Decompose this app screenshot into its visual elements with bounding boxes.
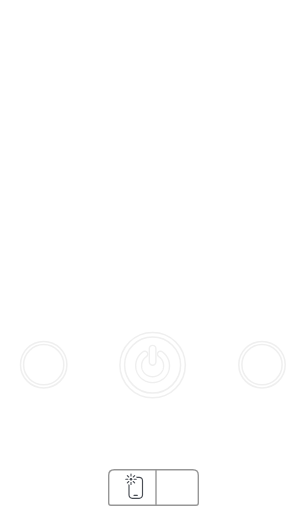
button[interactable]: Remote control <box>108 469 156 506</box>
button[interactable]: Volume down <box>21 342 67 388</box>
button[interactable]: Volume up <box>239 342 285 388</box>
button[interactable]: Touchpad <box>156 469 199 506</box>
button[interactable]: Power <box>120 332 185 397</box>
